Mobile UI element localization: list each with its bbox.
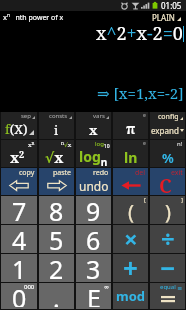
staticText: [: [144, 196, 146, 204]
staticText: 6: [86, 223, 101, 251]
staticText: consts: [49, 112, 68, 120]
staticText: copy: [19, 168, 35, 178]
staticText: n!: [177, 140, 183, 148]
button[interactable]: config: [150, 112, 185, 139]
button[interactable]: e: [113, 140, 148, 167]
button[interactable]: +: [113, 254, 148, 282]
button[interactable]: del: [113, 168, 148, 195]
button[interactable]: .: [39, 283, 74, 309]
staticText: 5: [49, 223, 64, 251]
staticText: 9: [86, 194, 101, 222]
button[interactable]: xn: [1, 140, 37, 167]
staticText: 01:05: [161, 0, 182, 11]
staticText: 1: [12, 252, 27, 280]
other: Delete: [121, 180, 141, 191]
staticText: ]: [181, 196, 183, 204]
button[interactable]: 1: [1, 254, 37, 282]
button[interactable]: copy: [1, 168, 37, 195]
staticText: mod: [116, 287, 146, 305]
other: Copy: [9, 180, 29, 191]
staticText: x: [89, 121, 98, 139]
other: Paste: [47, 180, 67, 191]
staticText: i: [54, 121, 59, 139]
button[interactable]: n√x: [39, 140, 74, 167]
staticText: logn: [79, 147, 108, 169]
staticText: undo: [79, 178, 109, 194]
button[interactable]: 8: [39, 196, 74, 224]
button[interactable]: 9: [76, 196, 111, 224]
staticText: f(X): [5, 120, 28, 138]
button[interactable]: ]: [150, 196, 185, 224]
staticText: E: [87, 281, 101, 307]
button[interactable]: ÷: [150, 225, 185, 253]
button[interactable]: PLAIN: [146, 12, 184, 23]
staticText: 2: [49, 252, 64, 280]
staticText: C: [159, 173, 172, 199]
staticText: e: [143, 112, 146, 119]
staticText: 3: [86, 252, 101, 280]
button[interactable]: 5: [39, 225, 74, 253]
staticText: sep: [21, 112, 31, 120]
staticText: xn nth power of x: [3, 12, 64, 22]
button[interactable]: 000: [1, 283, 37, 309]
button[interactable]: 4: [1, 225, 37, 253]
staticText: 8: [49, 194, 64, 222]
button[interactable]: n!: [150, 140, 185, 167]
button[interactable]: exit: [150, 168, 185, 195]
staticText: 000: [24, 283, 35, 291]
button[interactable]: equal: [150, 283, 185, 309]
staticText: .: [53, 281, 60, 307]
staticText: vars: [93, 112, 105, 120]
staticText: √x: [45, 148, 64, 167]
staticText: exit: [171, 168, 183, 178]
staticText: −: [160, 250, 176, 278]
button[interactable]: log10: [76, 140, 111, 167]
button[interactable]: e: [113, 112, 148, 139]
staticText: ⇒ [x=1,x=-2]: [97, 83, 184, 103]
button[interactable]: ∞: [76, 283, 111, 309]
staticText: log10: [95, 140, 110, 149]
staticText: n√x: [61, 140, 72, 149]
staticText: x2: [10, 148, 25, 167]
staticText: %: [162, 149, 174, 167]
button[interactable]: redo: [76, 168, 111, 195]
staticText: ×: [124, 222, 138, 250]
staticText: redo: [93, 168, 109, 178]
staticText: e: [143, 140, 146, 147]
staticText: 7: [12, 194, 27, 222]
button[interactable]: 6: [76, 225, 111, 253]
button[interactable]: 7: [1, 196, 37, 224]
staticText: equal: [160, 283, 176, 291]
staticText: ln: [124, 148, 138, 167]
staticText: 4: [12, 223, 27, 251]
staticText: π: [126, 119, 136, 138]
button[interactable]: mod: [113, 283, 148, 309]
staticText: expand: [151, 125, 179, 136]
button[interactable]: −: [150, 254, 185, 282]
staticText: ∞: [104, 283, 109, 290]
button[interactable]: vars: [76, 112, 111, 139]
staticText: ): [165, 198, 171, 225]
button[interactable]: sep: [1, 112, 37, 139]
button[interactable]: ×: [113, 225, 148, 253]
staticText: +: [123, 250, 138, 278]
staticText: paste: [53, 168, 72, 178]
staticText: config: [158, 112, 179, 122]
staticText: (: [128, 198, 134, 225]
staticText: 0: [12, 281, 27, 307]
staticText: PLAIN: [152, 12, 175, 23]
button[interactable]: paste: [39, 168, 74, 195]
button[interactable]: [: [113, 196, 148, 224]
staticText: ÷: [161, 222, 175, 250]
staticText: del: [135, 168, 146, 178]
button[interactable]: consts: [39, 112, 74, 139]
staticText: xn: [28, 140, 35, 149]
staticText: x^2+x-2=0: [96, 21, 183, 46]
button[interactable]: 2: [39, 254, 74, 282]
staticText: ≡: [177, 284, 183, 291]
button[interactable]: 3: [76, 254, 111, 282]
